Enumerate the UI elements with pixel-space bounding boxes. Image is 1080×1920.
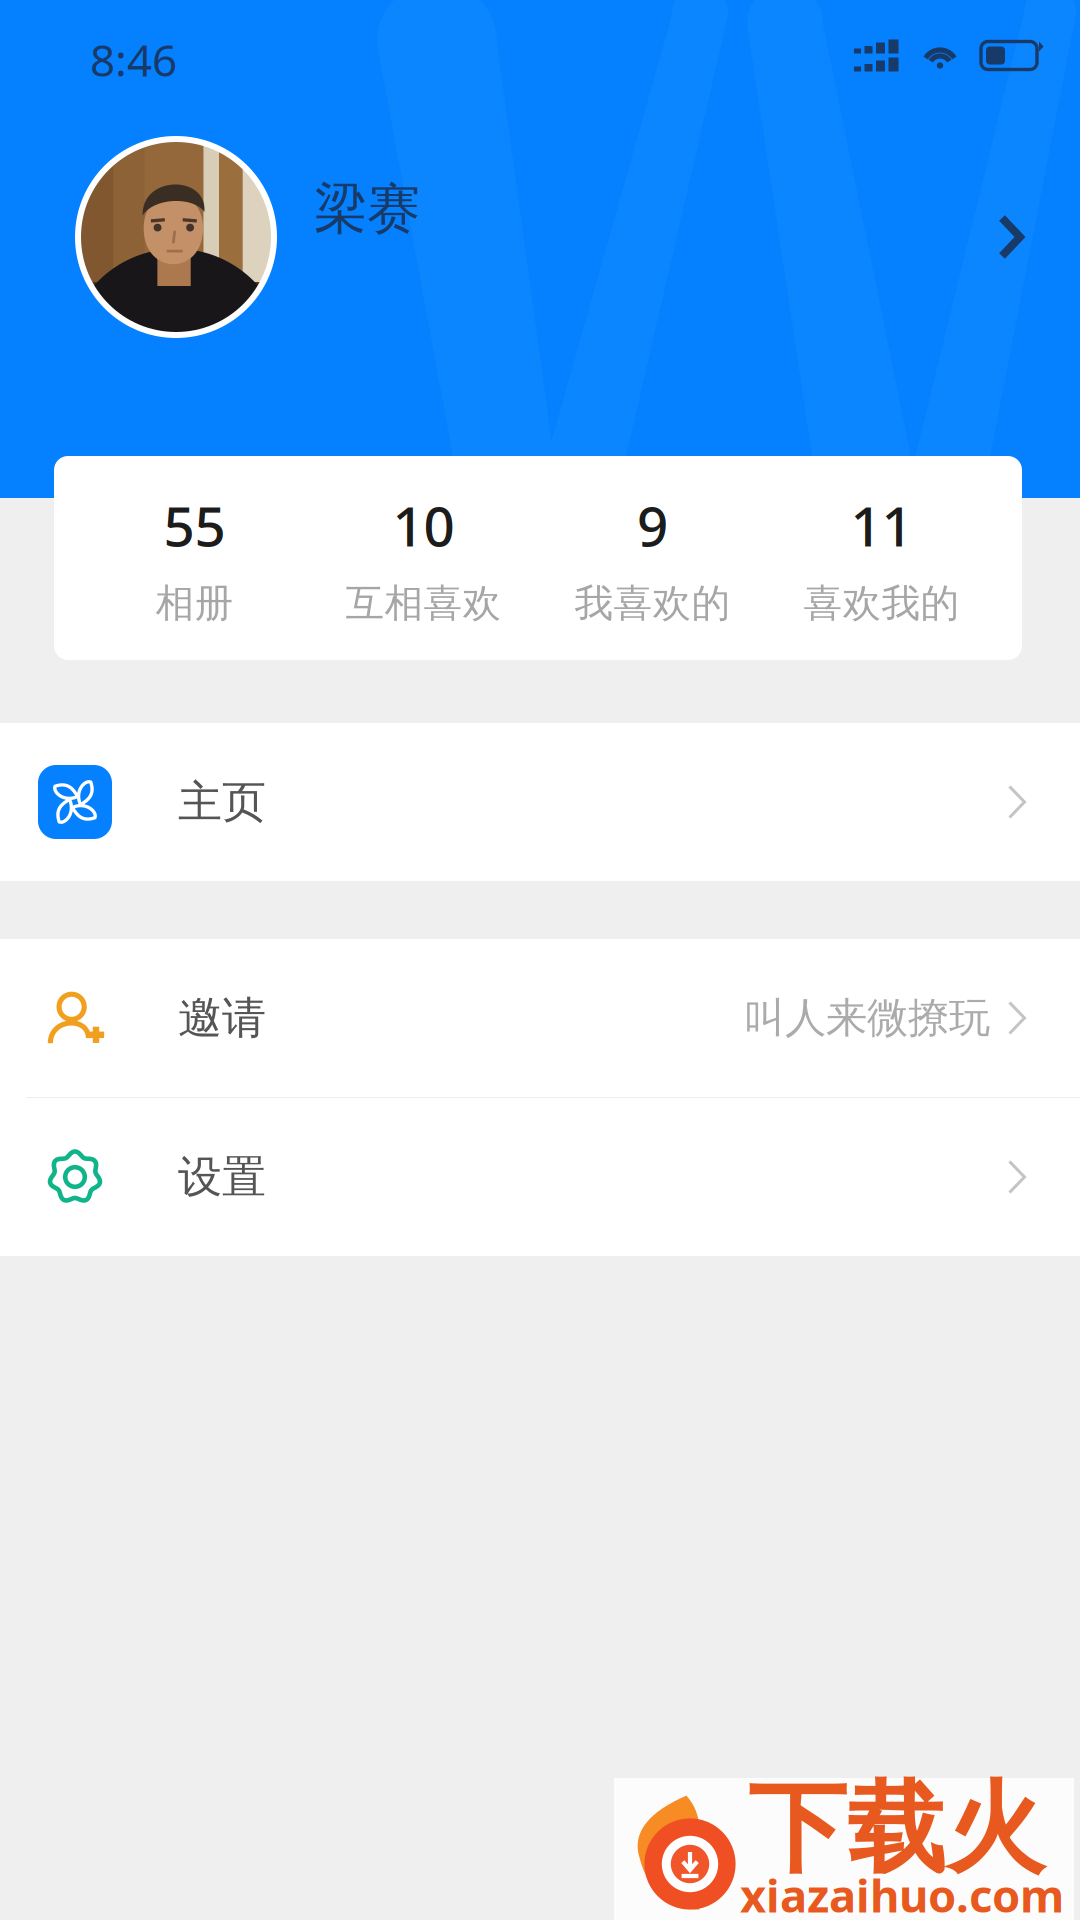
staticText: 互相喜欢 xyxy=(345,580,501,627)
staticText: 梁赛 xyxy=(314,176,420,242)
staticText: 下载火 xyxy=(748,1768,1045,1890)
button[interactable]: 主页 xyxy=(0,723,1080,881)
staticText: 喜欢我的 xyxy=(803,580,959,627)
staticText: xiazaihuo.com xyxy=(740,1865,1064,1920)
staticText: 55 xyxy=(163,489,225,562)
staticText: 主页 xyxy=(178,775,266,829)
staticText: 9 xyxy=(637,489,668,562)
button[interactable]: 10 xyxy=(309,456,538,660)
staticText: 邀请 xyxy=(178,991,266,1045)
staticText: 我喜欢的 xyxy=(574,580,730,627)
button[interactable]: 设置 xyxy=(0,1098,1080,1256)
staticText: 叫人来微撩玩 xyxy=(744,993,990,1043)
button[interactable]: 55 xyxy=(80,456,309,660)
staticText: 相册 xyxy=(155,580,233,627)
button[interactable]: 梁赛 xyxy=(0,111,1080,363)
button[interactable]: 11 xyxy=(767,456,996,660)
staticText: 10 xyxy=(392,489,454,562)
staticText: 设置 xyxy=(178,1150,266,1204)
staticText: 8:46 xyxy=(90,30,177,89)
button[interactable]: 9 xyxy=(538,456,767,660)
button[interactable]: 邀请 xyxy=(0,939,1080,1097)
staticText: 11 xyxy=(850,489,912,562)
